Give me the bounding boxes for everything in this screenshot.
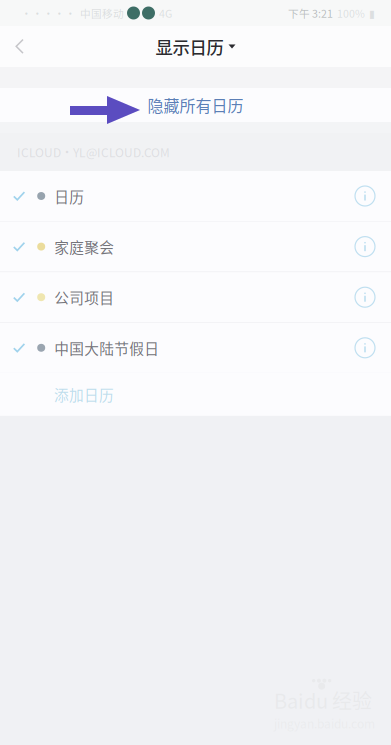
button[interactable]: 隐藏所有日历 bbox=[0, 88, 391, 122]
button[interactable]: 中国大陆节假日 bbox=[0, 323, 391, 373]
staticText: 显示日历 bbox=[155, 34, 223, 59]
button[interactable]: 家庭聚会 bbox=[0, 222, 391, 272]
button[interactable]: 添加日历 bbox=[0, 373, 391, 416]
staticText: 添加日历 bbox=[54, 384, 114, 405]
button[interactable]: Back bbox=[0, 26, 37, 67]
staticText: ••••• 中国移动 bbox=[21, 5, 124, 21]
staticText: 100% ▮ bbox=[337, 5, 375, 21]
button[interactable]: 日历 bbox=[0, 171, 391, 221]
button[interactable]: 显示日历 bbox=[149, 26, 241, 67]
staticText: 4G bbox=[159, 5, 172, 21]
button[interactable]: 公司项目 bbox=[0, 272, 391, 322]
staticText: 公司项目 bbox=[54, 287, 114, 308]
staticText: 中国大陆节假日 bbox=[54, 337, 159, 358]
staticText: ICLOUD·YL@ICLOUD.COM bbox=[17, 143, 170, 161]
staticText: 日历 bbox=[54, 185, 84, 207]
staticText: 下午 3:21 bbox=[288, 5, 333, 21]
staticText: 隐藏所有日历 bbox=[147, 93, 243, 117]
staticText: 家庭聚会 bbox=[54, 236, 114, 257]
